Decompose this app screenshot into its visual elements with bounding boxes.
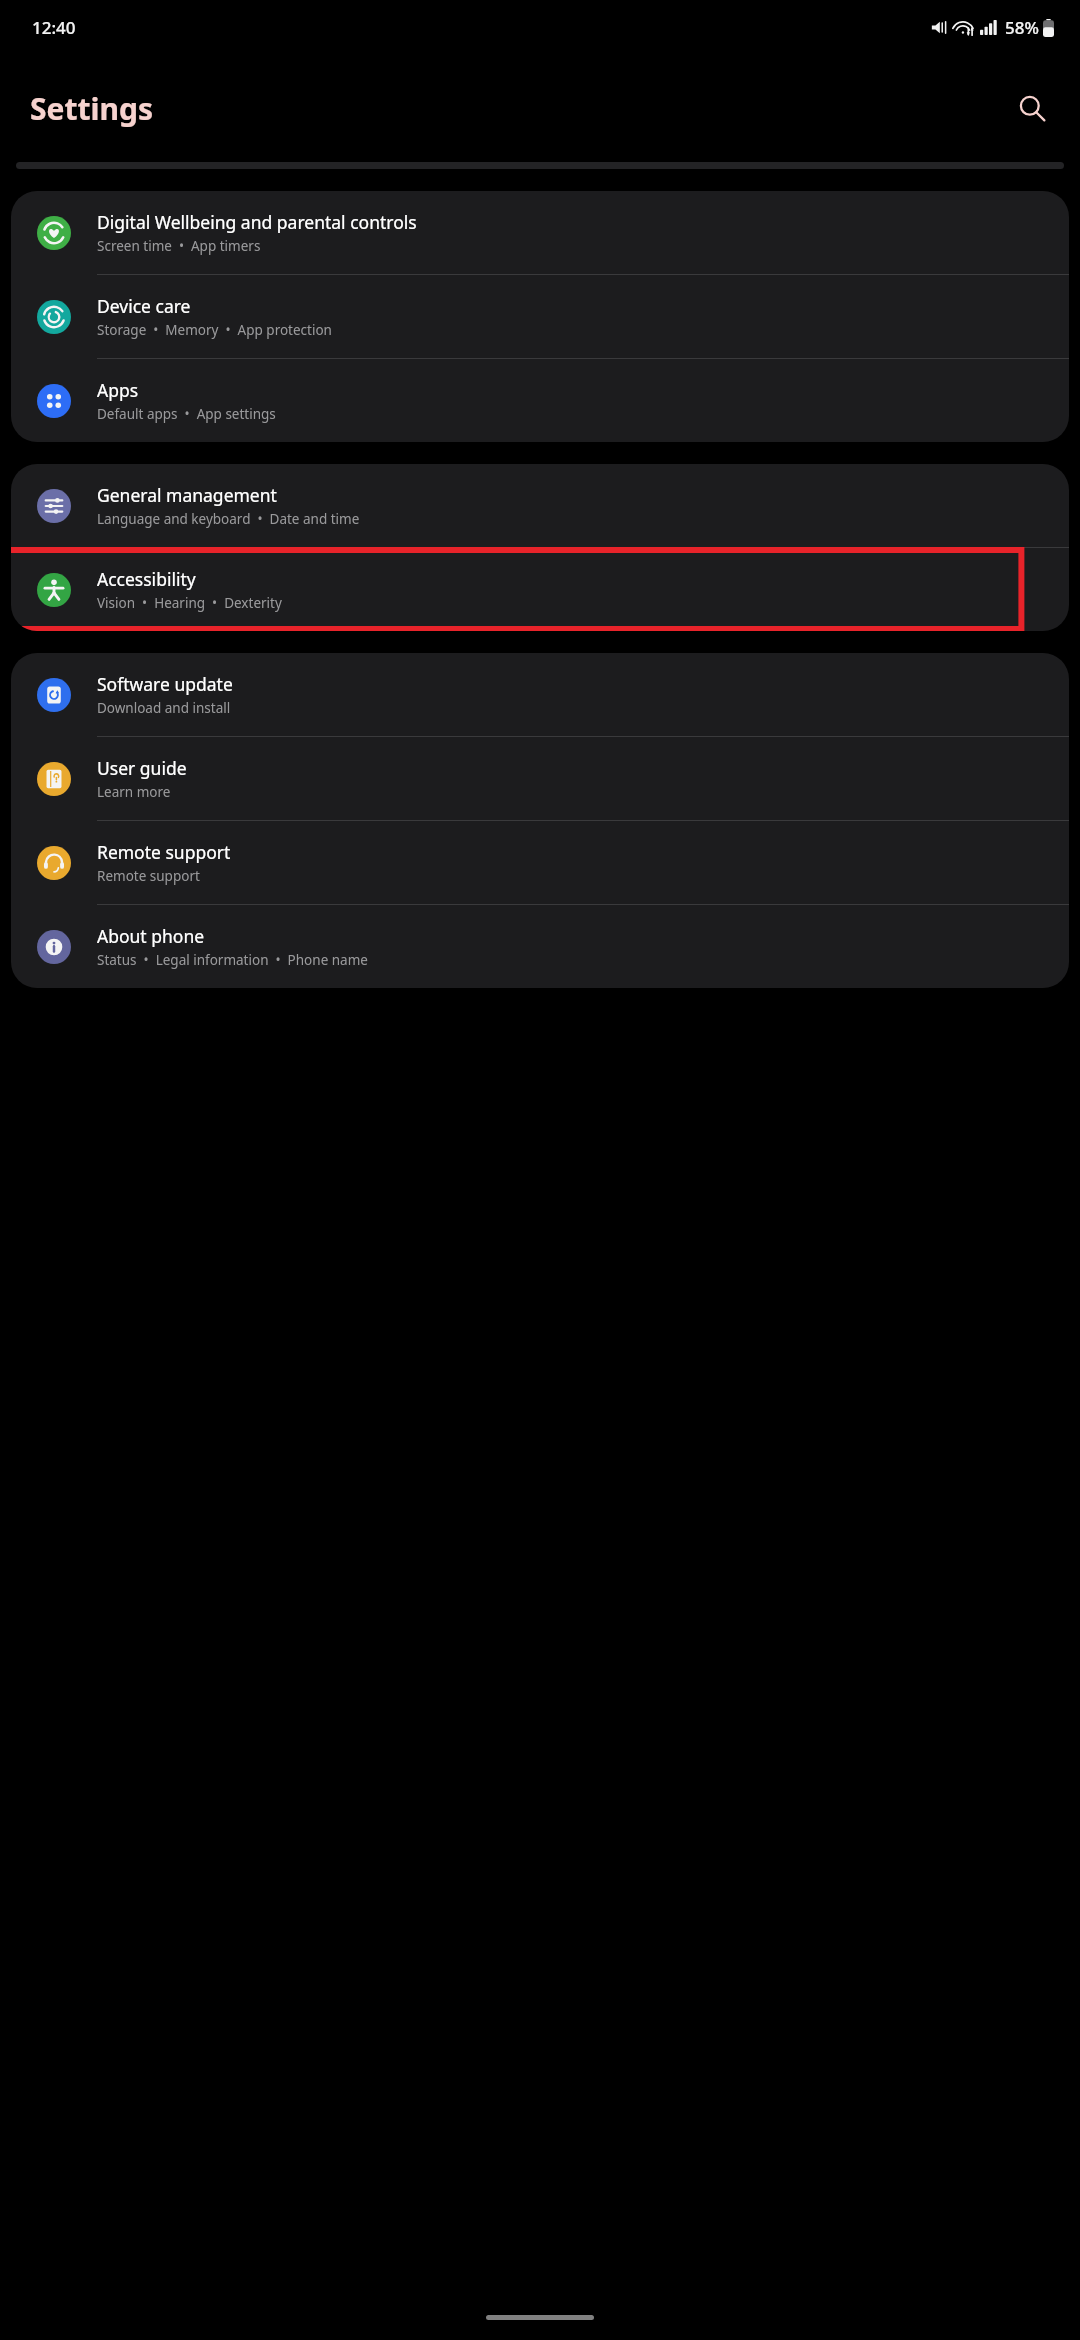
staticText: Default apps • App settings: [97, 405, 276, 423]
button[interactable]: User guide: [11, 737, 1069, 820]
staticText: 12:40: [32, 16, 76, 39]
staticText: Learn more: [97, 783, 171, 801]
staticText: Settings: [30, 88, 153, 129]
staticText: Software update: [97, 672, 233, 696]
staticText: Digital Wellbeing and parental controls: [97, 210, 417, 234]
button[interactable]: Search settings: [1006, 82, 1058, 134]
staticText: Remote support: [97, 840, 231, 864]
button[interactable]: Remote support: [11, 821, 1069, 904]
staticText: Accessibility: [97, 567, 196, 591]
button[interactable]: About phone: [11, 905, 1069, 988]
staticText: Download and install: [97, 699, 231, 717]
staticText: Device care: [97, 294, 191, 318]
staticText: Status • Legal information • Phone name: [97, 951, 368, 969]
button[interactable]: Apps: [11, 359, 1069, 442]
staticText: Vision • Hearing • Dexterity: [97, 594, 282, 612]
button[interactable]: Software update: [11, 653, 1069, 736]
staticText: User guide: [97, 756, 187, 780]
staticText: Screen time • App timers: [97, 237, 261, 255]
staticText: General management: [97, 483, 277, 507]
staticText: 58%: [1005, 16, 1039, 39]
button[interactable]: General management: [11, 464, 1069, 547]
staticText: Apps: [97, 378, 139, 402]
staticText: Language and keyboard • Date and time: [97, 510, 360, 528]
button[interactable]: Accessibility: [11, 548, 1069, 631]
button[interactable]: Device care: [11, 275, 1069, 358]
staticText: Storage • Memory • App protection: [97, 321, 332, 339]
button[interactable]: Digital Wellbeing and parental controls: [11, 191, 1069, 274]
staticText: About phone: [97, 924, 205, 948]
staticText: Remote support: [97, 867, 200, 885]
